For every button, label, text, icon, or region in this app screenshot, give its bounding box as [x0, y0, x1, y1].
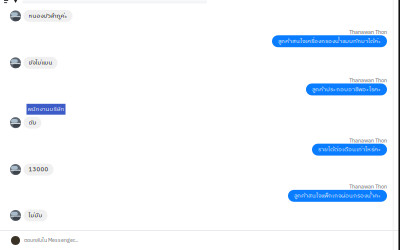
staticText: รายได้ต่อเดือนเท่าไหร่คะ: [318, 145, 381, 155]
staticText: ลูกค้าประกอบอาชีพอะไรคะ: [312, 84, 381, 94]
button[interactable]: ดับ: [10, 117, 400, 129]
staticText: ดับ: [28, 118, 36, 128]
button[interactable]: Menu: [4, 0, 9, 6]
staticText: Thanawan Thon: [349, 29, 387, 35]
button[interactable]: Thanawan Thon: [272, 29, 387, 47]
staticText: Thanawan Thon: [349, 77, 387, 83]
staticText: พนักงานบริษัท: [27, 104, 64, 114]
staticText: หนองบัวลำภูค่ะ: [28, 11, 67, 21]
button[interactable]: ตอบกลับใน Messenger…: [0, 231, 400, 250]
button[interactable]: Bookmark: [14, 0, 17, 3]
staticText: ยังไม่แบน: [28, 58, 52, 68]
staticText: ลูกค้าสนใจแพ็กเกจผ่อนกรองน้ำคะ: [294, 191, 381, 201]
button[interactable]: พนักงานบริษัท: [10, 104, 65, 115]
button[interactable]: หนองบัวลำภูค่ะ: [10, 10, 400, 22]
button[interactable]: Thanawan Thon: [288, 184, 387, 202]
staticText: ไม่มีบ: [28, 210, 42, 220]
button[interactable]: Thanawan Thon: [306, 77, 387, 95]
staticText: Thanawan Thon: [349, 184, 387, 190]
staticText: 13000: [28, 165, 48, 174]
staticText: ตอบกลับใน Messenger…: [24, 236, 78, 245]
staticText: Thanawan Thon: [349, 137, 387, 144]
staticText: ลูกค้าสนใจเครื่องกรองน้ำแบบทักมาได้ค่ะ: [278, 36, 381, 46]
button[interactable]: Thanawan Thon: [312, 137, 387, 156]
button[interactable]: 13000: [10, 164, 400, 175]
button[interactable]: ไม่มีบ: [10, 209, 400, 221]
button[interactable]: ยังไม่แบน: [10, 57, 400, 69]
